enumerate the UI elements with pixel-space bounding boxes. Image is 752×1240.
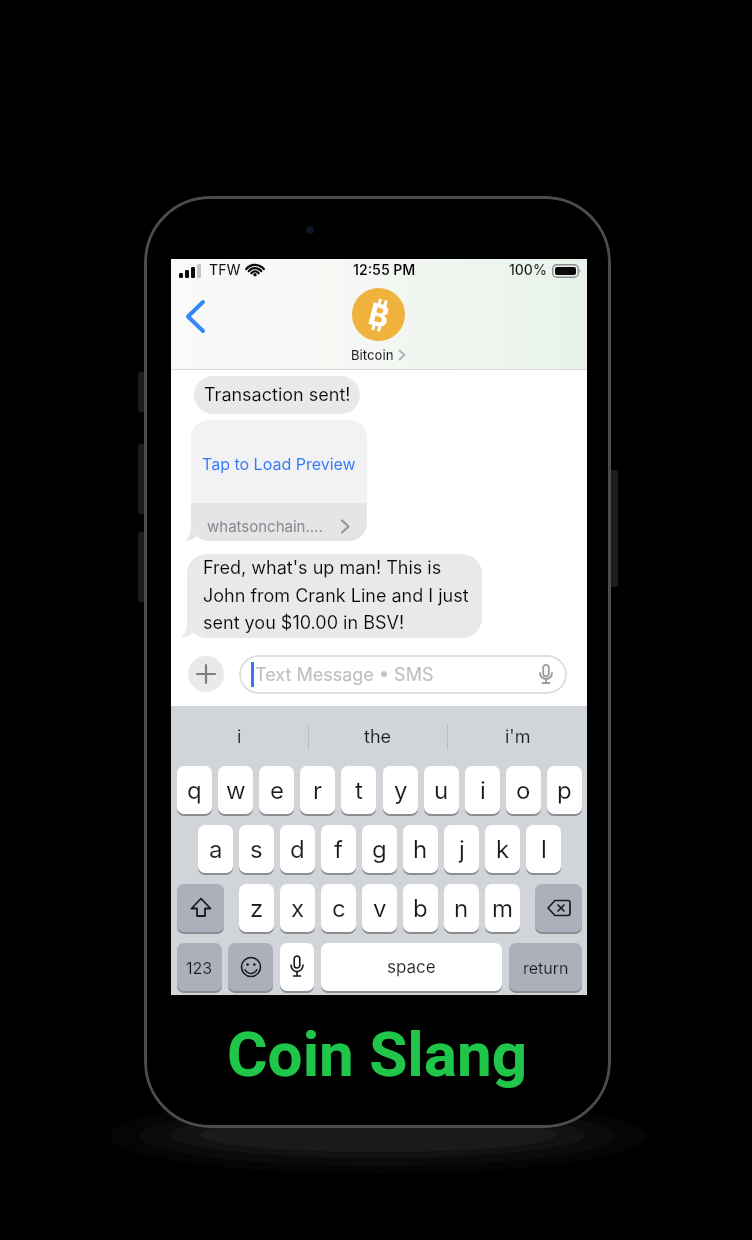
staticText: the — [364, 726, 392, 748]
button[interactable]: o — [506, 766, 541, 814]
staticText: Bitcoin — [351, 347, 394, 363]
button[interactable]: f — [321, 825, 356, 873]
button[interactable]: i'm — [448, 726, 587, 748]
button[interactable] — [535, 884, 582, 932]
staticText: i'm — [505, 726, 531, 748]
button[interactable]: e — [259, 766, 294, 814]
button[interactable]: z — [239, 884, 274, 932]
staticText: e — [270, 776, 284, 805]
button[interactable]: i — [171, 726, 308, 748]
staticText: d — [290, 835, 305, 864]
button[interactable]: b — [403, 884, 438, 932]
staticText: h — [413, 835, 428, 864]
button[interactable]: return — [509, 943, 582, 991]
button[interactable]: j — [444, 825, 479, 873]
staticText: l — [541, 835, 547, 864]
staticText: Fred, what's up man! This is John from C… — [203, 557, 469, 633]
staticText: y — [394, 776, 408, 805]
staticText: TFW — [209, 261, 241, 278]
staticText: p — [557, 776, 572, 805]
button[interactable]: c — [321, 884, 356, 932]
staticText: f — [334, 835, 343, 864]
button[interactable]: w — [218, 766, 253, 814]
staticText: g — [372, 835, 387, 864]
staticText: v — [373, 894, 387, 923]
button[interactable]: g — [362, 825, 397, 873]
staticText: a — [209, 835, 223, 864]
staticText: n — [454, 894, 469, 923]
button[interactable]: p — [547, 766, 582, 814]
button[interactable]: Tap to Load Preview — [191, 420, 367, 541]
staticText: u — [434, 776, 449, 805]
button[interactable]: m — [485, 884, 520, 932]
button[interactable]: l — [526, 825, 561, 873]
staticText: whatsonchain.... — [207, 517, 323, 535]
staticText: space — [387, 957, 436, 978]
button[interactable]: n — [444, 884, 479, 932]
button[interactable]: 123 — [177, 943, 222, 991]
staticText: B — [365, 295, 393, 335]
staticText: m — [492, 894, 514, 923]
staticText: return — [523, 958, 569, 977]
button[interactable] — [177, 884, 224, 932]
staticText: Transaction sent! — [204, 384, 351, 406]
staticText: o — [516, 776, 531, 805]
staticText: x — [291, 894, 305, 923]
staticText: 100% — [509, 261, 547, 278]
staticText: j — [459, 835, 465, 864]
button[interactable]: y — [383, 766, 418, 814]
button[interactable]: k — [485, 825, 520, 873]
button[interactable]: t — [341, 766, 376, 814]
button[interactable]: a — [198, 825, 233, 873]
button[interactable]: B — [352, 288, 405, 341]
staticText: c — [332, 894, 346, 923]
button[interactable] — [228, 943, 273, 991]
staticText: q — [187, 776, 202, 805]
staticText: z — [250, 894, 264, 923]
staticText: i — [237, 726, 242, 748]
button[interactable]: d — [280, 825, 315, 873]
staticText: Text Message • SMS — [255, 664, 434, 686]
staticText: t — [355, 776, 363, 805]
button[interactable]: r — [300, 766, 335, 814]
staticText: s — [250, 835, 263, 864]
button[interactable] — [188, 656, 224, 692]
staticText: k — [496, 835, 510, 864]
button[interactable] — [179, 295, 213, 339]
button[interactable]: q — [177, 766, 212, 814]
button[interactable] — [280, 943, 314, 991]
button[interactable]: Bitcoin — [351, 347, 406, 363]
staticText: Coin Slang — [227, 1018, 528, 1091]
button[interactable]: x — [280, 884, 315, 932]
button[interactable]: the — [309, 726, 447, 748]
staticText: r — [313, 776, 323, 805]
button[interactable]: i — [465, 766, 500, 814]
button[interactable]: s — [239, 825, 274, 873]
staticText: i — [480, 776, 486, 805]
staticText: 123 — [186, 958, 213, 977]
button[interactable]: space — [321, 943, 502, 991]
button[interactable]: v — [362, 884, 397, 932]
staticText: w — [226, 776, 246, 805]
button[interactable]: h — [403, 825, 438, 873]
staticText: Tap to Load Preview — [202, 454, 356, 473]
button[interactable]: u — [424, 766, 459, 814]
staticText: b — [413, 894, 428, 923]
button[interactable]: Text Message • SMS — [239, 655, 567, 694]
staticText: 12:55 PM — [353, 261, 416, 278]
